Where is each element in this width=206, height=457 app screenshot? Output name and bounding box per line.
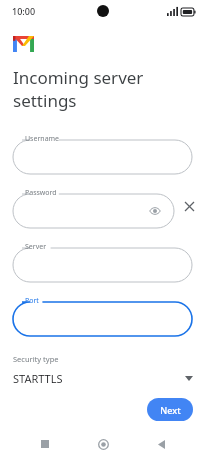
staticText: Username xyxy=(25,134,60,144)
button[interactable]: Show password xyxy=(146,202,164,220)
staticText: STARTTLS xyxy=(13,371,63,386)
button[interactable]: Recent apps xyxy=(32,431,58,457)
button[interactable]: Back xyxy=(148,431,174,457)
button[interactable]: Username xyxy=(13,134,192,174)
button[interactable]: Server xyxy=(13,242,192,282)
staticText: Server xyxy=(25,242,47,252)
staticText: Port xyxy=(25,296,39,306)
button[interactable]: Home xyxy=(90,431,116,457)
button[interactable]: Next xyxy=(147,398,193,421)
button[interactable]: Clear password xyxy=(179,196,199,216)
staticText: 10:00 xyxy=(12,5,36,17)
button[interactable]: STARTTLS xyxy=(13,371,193,386)
staticText: Incoming server settings xyxy=(13,66,144,112)
staticText: Password xyxy=(25,188,57,198)
staticText: Next xyxy=(160,404,181,416)
staticText: Security type xyxy=(13,354,59,364)
button[interactable]: Port xyxy=(13,296,192,336)
other: Open security type menu xyxy=(185,376,193,381)
button[interactable]: Password xyxy=(13,188,174,228)
